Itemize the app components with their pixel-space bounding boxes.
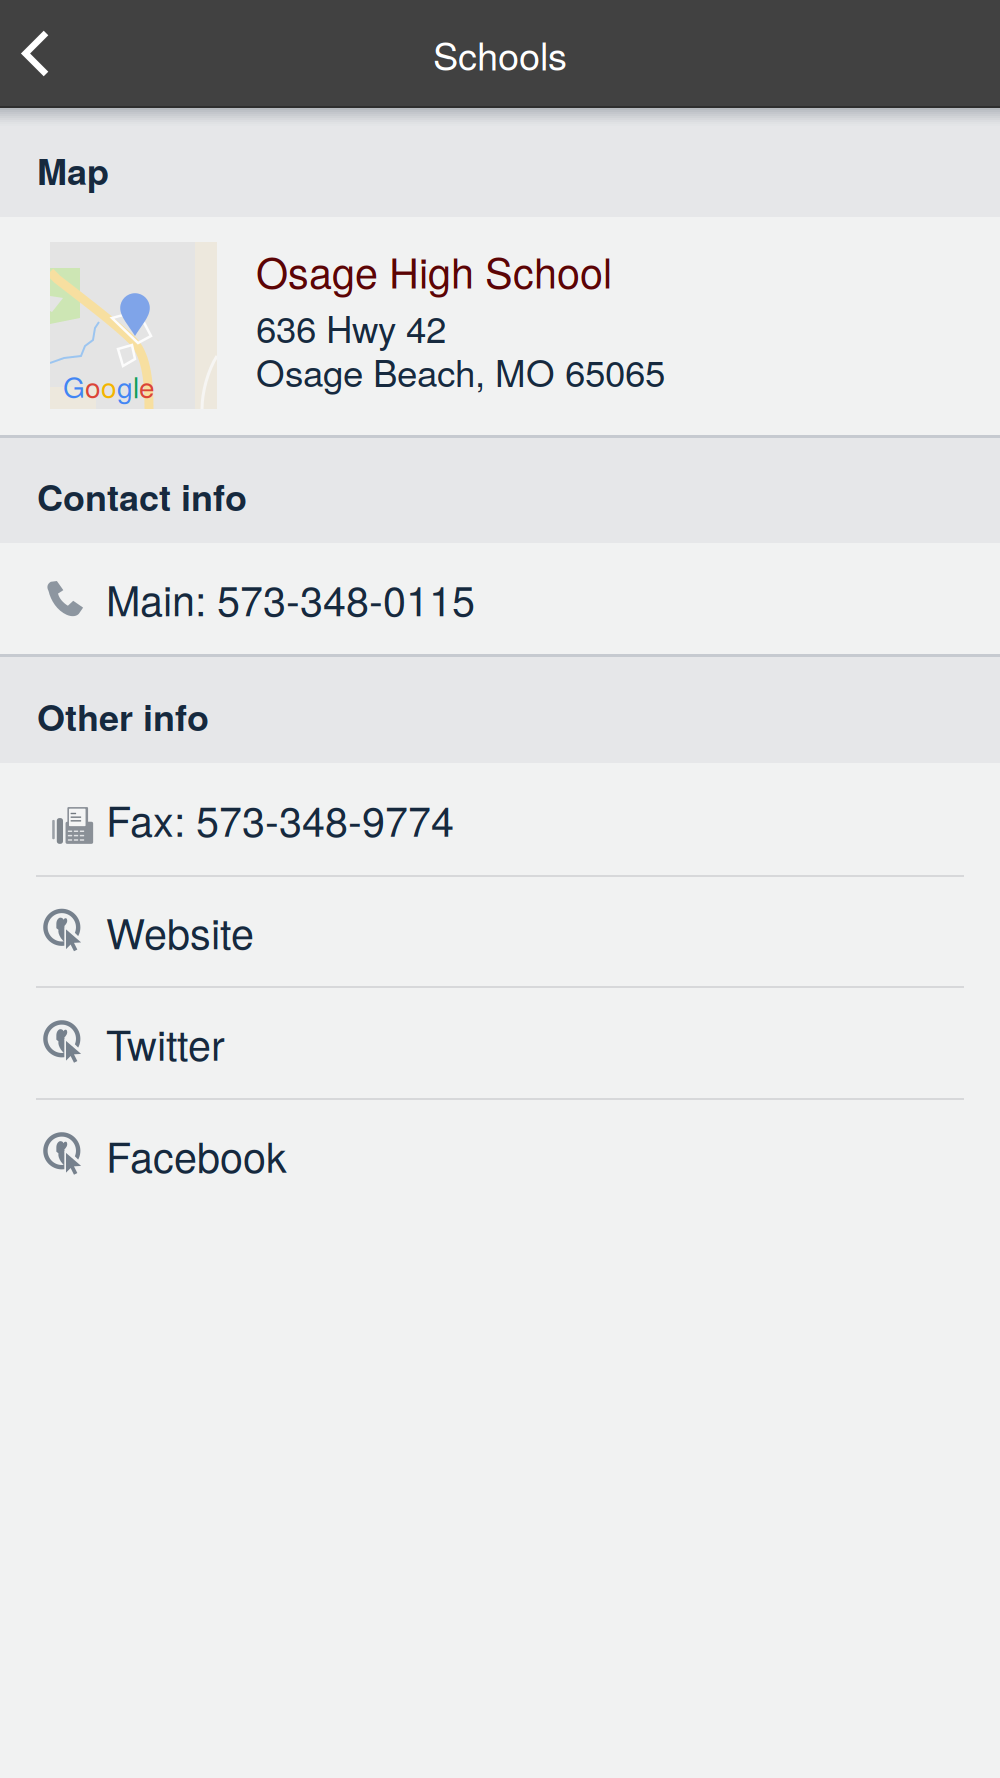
button[interactable]: Main: 573-348-0115	[0, 543, 1000, 654]
staticText: Other info	[37, 690, 209, 742]
staticText: o	[101, 366, 117, 406]
staticText: Map	[37, 144, 109, 196]
staticText: Website	[106, 902, 254, 961]
staticText: G	[63, 366, 85, 406]
staticText: Contact info	[37, 470, 247, 522]
staticText: Osage Beach, MO 65065	[256, 345, 665, 397]
staticText: l	[133, 366, 139, 406]
button[interactable]: Facebook	[0, 1100, 1000, 1210]
button[interactable]: Website	[0, 877, 1000, 986]
button[interactable]: Twitter	[0, 988, 1000, 1098]
staticText: Schools	[433, 27, 567, 81]
staticText: e	[139, 366, 155, 406]
staticText: 636 Hwy 42	[256, 301, 446, 353]
staticText: Osage High School	[256, 241, 612, 300]
staticText: Main: 573-348-0115	[106, 569, 475, 628]
staticText: g	[117, 366, 133, 406]
button[interactable]: G	[0, 217, 1000, 435]
button[interactable]: Fax: 573-348-9774	[0, 763, 1000, 875]
staticText: Twitter	[106, 1013, 225, 1073]
staticText: Fax: 573-348-9774	[106, 789, 454, 849]
staticText: o	[85, 366, 101, 406]
staticText: Facebook	[106, 1125, 287, 1185]
button[interactable]: Back	[0, 0, 100, 108]
